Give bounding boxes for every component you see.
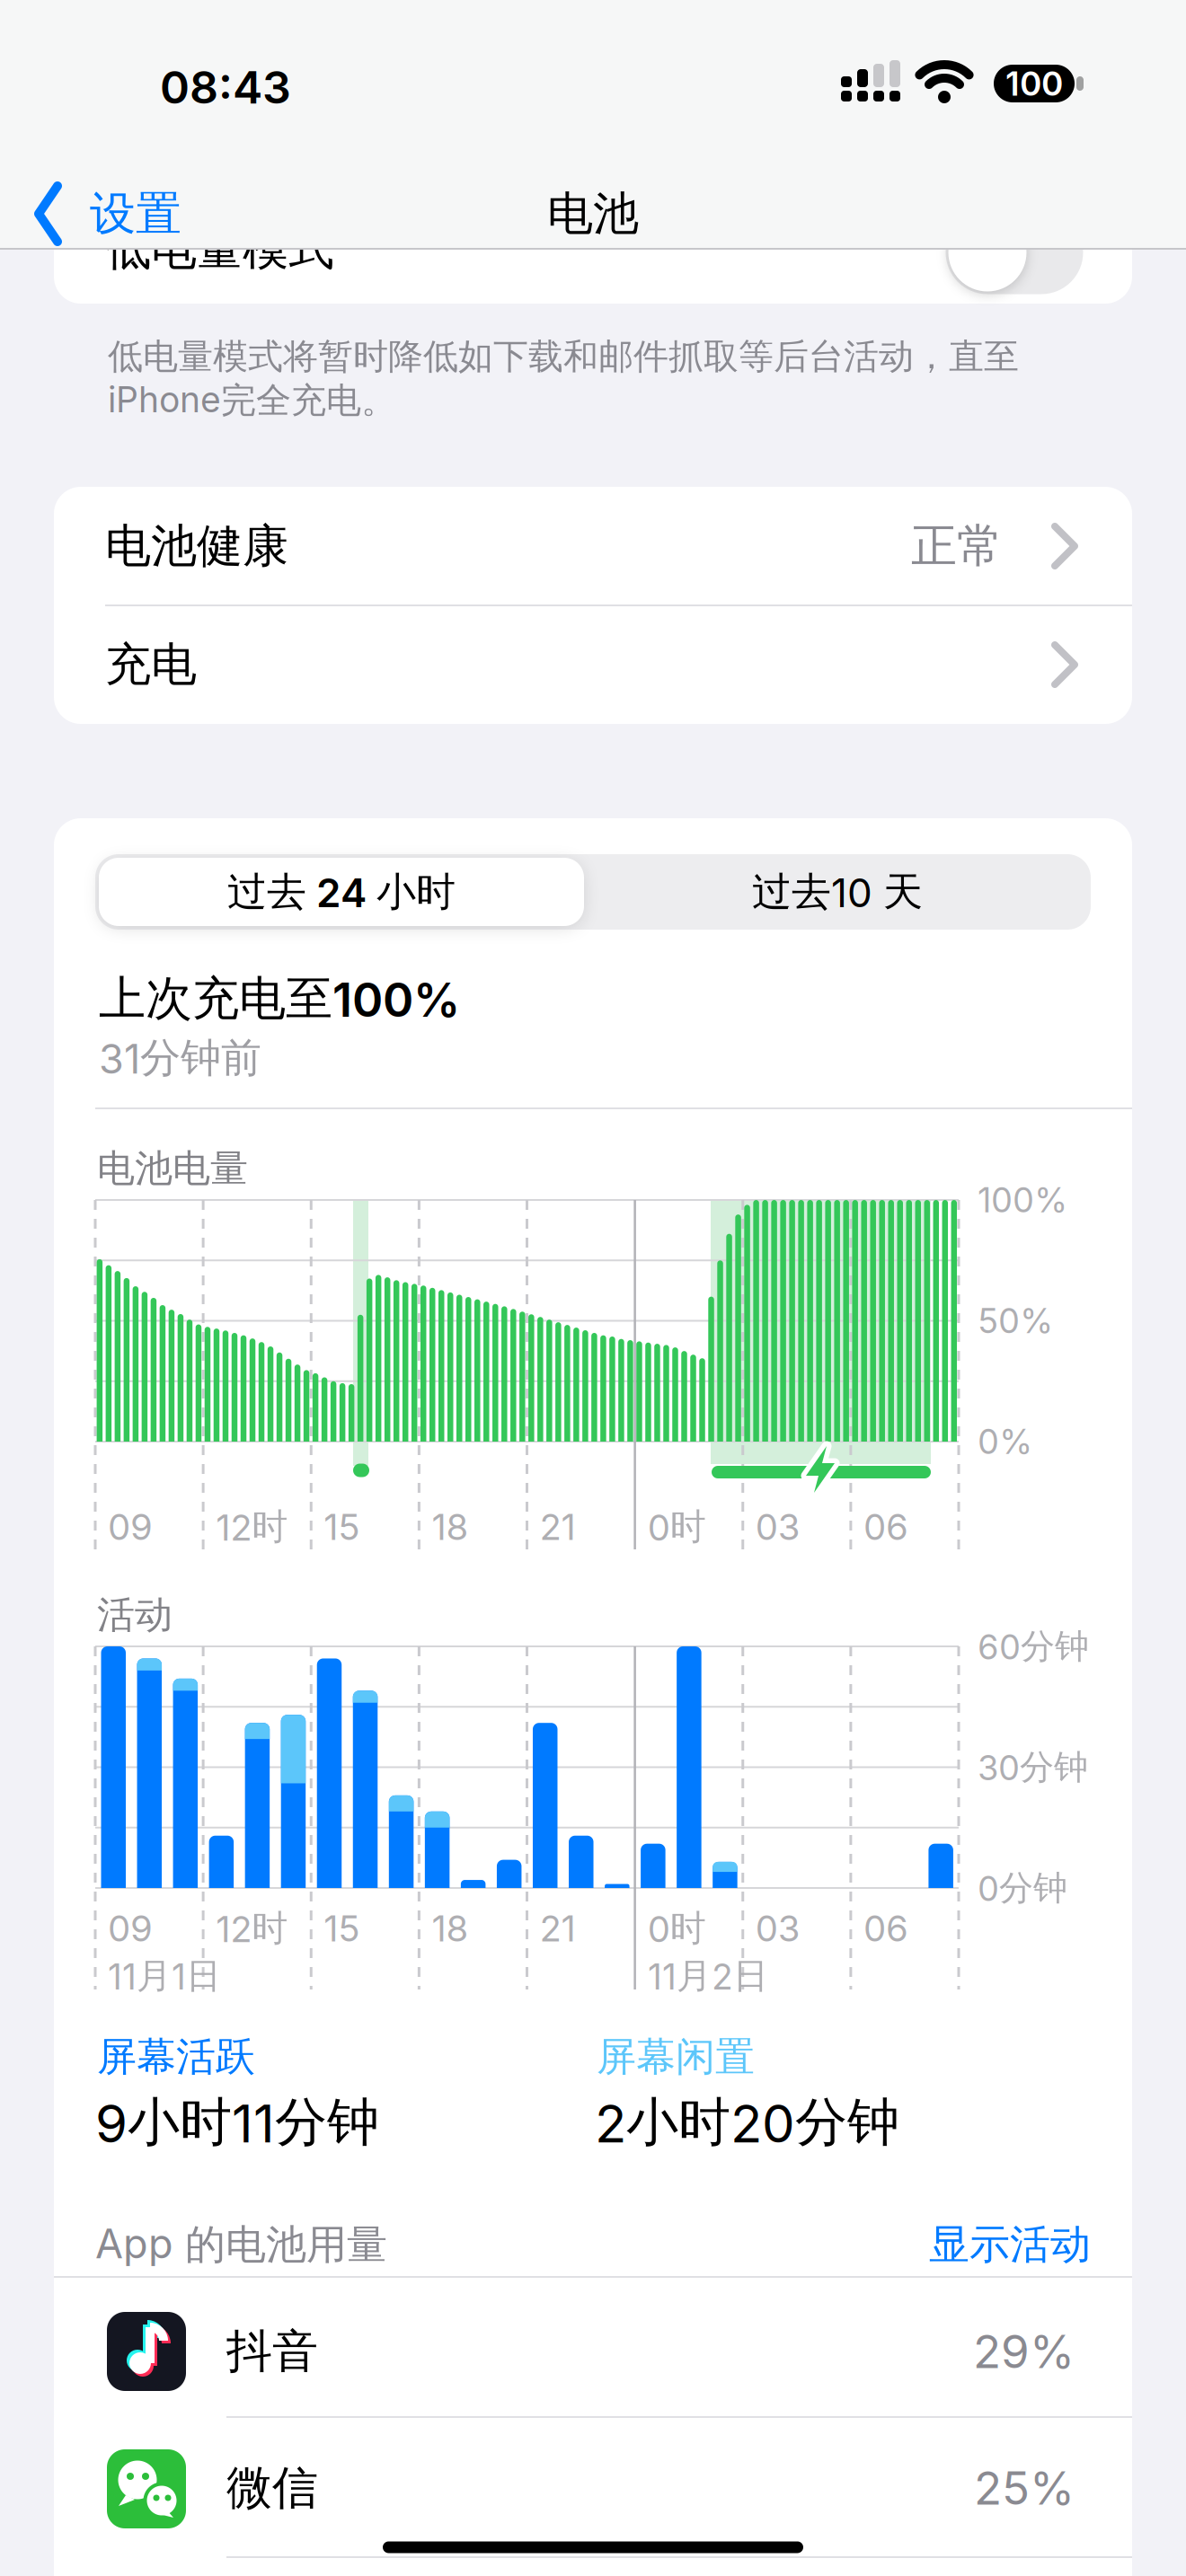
staticText: 50% (978, 1301, 1053, 1341)
staticText: 08:43 (160, 61, 291, 114)
staticText: 11月2日 (648, 1954, 768, 1997)
staticText: 15 (324, 1506, 360, 1548)
staticText: 正常 (911, 518, 1003, 574)
staticText: 100 (1005, 64, 1063, 103)
staticText: 09 (108, 1907, 153, 1950)
staticText: 12时 (216, 1906, 288, 1950)
staticText: 03 (755, 1506, 800, 1548)
staticText: 0分钟 (978, 1867, 1067, 1909)
staticText: 低电量模式将暂时降低如下载和邮件抓取等后台活动，直至 (108, 335, 1019, 378)
staticText: 电池 (547, 186, 639, 242)
staticText: 显示活动 (929, 2220, 1091, 2269)
staticText: 微信 (226, 2460, 318, 2516)
staticText: 2小时20分钟 (595, 2090, 899, 2154)
staticText: 低电量模式 (105, 221, 334, 277)
staticText: 设置 (90, 186, 181, 242)
staticText: 03 (755, 1907, 800, 1950)
staticText: 活动 (97, 1592, 173, 1638)
staticText: 抖音 (226, 2323, 318, 2380)
staticText: 电池健康 (105, 518, 288, 574)
staticText: 06 (863, 1907, 908, 1950)
staticText: 过去10 天 (752, 868, 923, 916)
staticText: 30分钟 (978, 1746, 1088, 1788)
staticText: App 的电池用量 (95, 2220, 387, 2270)
staticText: 0时 (647, 1505, 706, 1549)
staticText: 过去 24 小时 (227, 868, 456, 916)
staticText: 21 (540, 1907, 575, 1950)
staticText: 31分钟前 (99, 1033, 261, 1083)
staticText: 屏幕活跃 (97, 2033, 255, 2081)
staticText: 0% (978, 1421, 1032, 1462)
staticText: 15 (324, 1907, 360, 1950)
staticText: 电池电量 (97, 1145, 248, 1192)
staticText: 充电 (105, 637, 197, 693)
staticText: 60分钟 (978, 1625, 1089, 1667)
staticText: 29% (973, 2324, 1075, 2378)
staticText: 100% (978, 1180, 1067, 1220)
staticText: 09 (108, 1506, 153, 1548)
staticText: 21 (540, 1506, 575, 1548)
staticText: iPhone完全充电。 (108, 379, 396, 422)
staticText: 06 (863, 1506, 908, 1548)
staticText: 18 (432, 1907, 468, 1950)
staticText: 12时 (216, 1505, 288, 1549)
staticText: 9小时11分钟 (95, 2090, 379, 2154)
staticText: 屏幕闲置 (597, 2033, 755, 2081)
staticText: 25% (974, 2461, 1075, 2515)
staticText: 上次充电至100% (99, 970, 460, 1028)
staticText: 11月1日 (108, 1954, 221, 1997)
staticText: 18 (432, 1506, 468, 1548)
staticText: 0时 (647, 1906, 706, 1950)
